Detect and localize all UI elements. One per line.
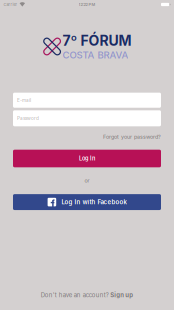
staticText: Password (17, 115, 39, 121)
button[interactable]: Log In (13, 150, 161, 167)
staticText: Carrier (3, 2, 17, 7)
staticText: Log In (79, 155, 95, 162)
staticText: 7º FÓRUM (62, 32, 131, 49)
button[interactable]: Don't have an account? (41, 290, 133, 299)
button[interactable]: Forgot your password? (13, 133, 161, 141)
button[interactable]: Log In with Facebook (13, 194, 161, 210)
staticText: 12:22 PM (78, 2, 95, 7)
staticText: Forgot your password? (103, 134, 161, 140)
staticText: Log In with Facebook (61, 198, 126, 206)
staticText: or (84, 177, 89, 184)
staticText: COSTA BRAVA (62, 49, 128, 61)
staticText: Sign up (110, 291, 133, 299)
staticText: E-mail (17, 97, 31, 103)
staticText: Don't have an account? (41, 291, 109, 299)
